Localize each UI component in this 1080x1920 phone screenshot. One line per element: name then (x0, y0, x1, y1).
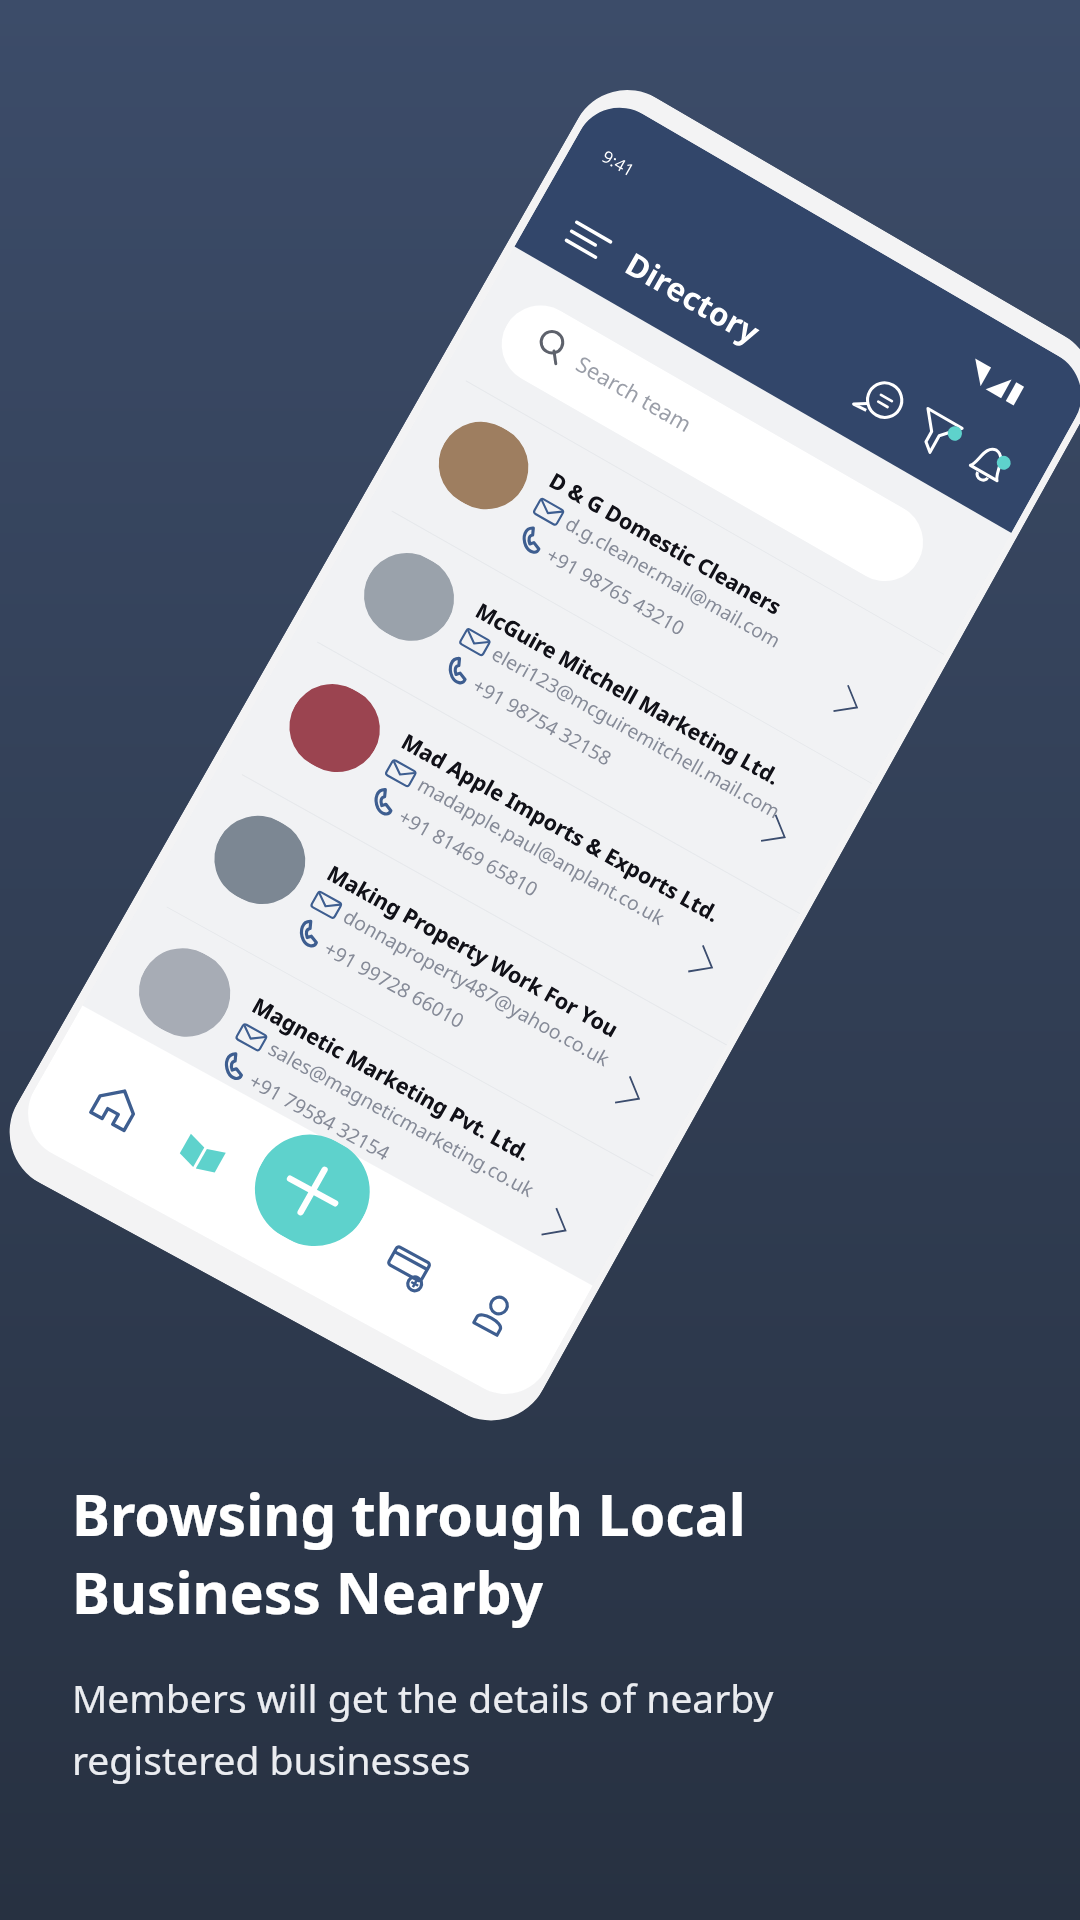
staticText: +91 79584 32154 (244, 1067, 396, 1167)
button[interactable] (135, 781, 717, 1194)
staticText: Members will get the details of nearby r… (72, 1671, 774, 1786)
staticText: Search team (571, 348, 698, 438)
staticText: eleri123@mcguiremitchell.mail.com (487, 640, 785, 825)
staticText: madapple.paul@anplant.co.uk (413, 771, 670, 931)
staticText: McGuire Mitchell Marketing Ltd. (471, 596, 786, 791)
button[interactable]: Profile (457, 1279, 523, 1343)
staticText: donnaproperty487@yahoo.co.uk (339, 902, 615, 1072)
staticText: d.g.cleaner.mail@mail.com (561, 510, 786, 654)
button[interactable] (59, 913, 644, 1326)
button[interactable]: Home (82, 1074, 149, 1139)
button[interactable]: Directory (169, 1121, 236, 1186)
button[interactable]: Filter (905, 402, 969, 465)
button[interactable] (285, 518, 862, 932)
staticText: +91 99728 66010 (319, 934, 470, 1034)
staticText: D & G Domestic Cleaners (544, 465, 787, 621)
staticText: +91 98754 32158 (468, 672, 617, 772)
button[interactable]: Messages (849, 369, 913, 433)
button[interactable]: Notifications (957, 432, 1021, 495)
staticText: +91 98765 43210 (542, 541, 690, 642)
button[interactable] (210, 649, 789, 1063)
staticText: 9:41 (598, 145, 639, 181)
staticText: Browsing through Local Business Nearby (72, 1475, 746, 1631)
button[interactable]: Add (235, 1115, 389, 1265)
button[interactable]: Search team (487, 291, 937, 595)
button[interactable] (360, 386, 934, 801)
staticText: sales@magneticmarketing.co.uk (264, 1035, 539, 1203)
staticText: Mad Apple Imports & Exports Ltd. (397, 726, 725, 928)
button[interactable]: Menu (565, 219, 612, 263)
staticText: Magnetic Marketing Pvt. Ltd. (247, 990, 536, 1167)
staticText: Directory (618, 242, 768, 354)
staticText: Making Property Work For You (322, 858, 624, 1043)
staticText: +91 81469 65810 (394, 803, 544, 903)
button[interactable]: Cards (377, 1235, 443, 1300)
